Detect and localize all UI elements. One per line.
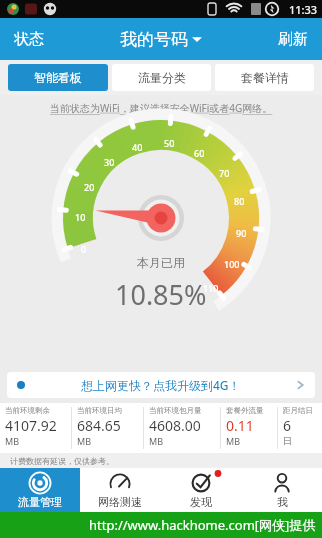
staticText: MB (77, 435, 92, 447)
staticText: 流量分类 (138, 70, 186, 85)
staticText: 684.65 (77, 416, 121, 435)
staticText: 10.85% (115, 276, 207, 313)
staticText: 距月结日 (283, 406, 313, 415)
staticText: 套餐外流量 (226, 406, 264, 415)
staticText: 110 (203, 282, 219, 294)
button[interactable]: 当前环境包月量 (144, 403, 220, 453)
staticText: MB (149, 435, 164, 447)
staticText: 当前环境包月量 (149, 406, 202, 415)
button[interactable]: 智能看板 (8, 64, 108, 91)
staticText: 80 (234, 195, 245, 207)
staticText: 我的号码 (120, 29, 188, 50)
staticText: 计费数据有延误，仅供参考。 (10, 456, 114, 466)
staticText: 状态 (14, 30, 44, 49)
staticText: 70 (219, 167, 230, 179)
staticText: 我 (277, 495, 288, 509)
staticText: 日 (283, 435, 292, 446)
staticText: 4107.92 (5, 416, 57, 435)
button[interactable]: 流量管理 (0, 468, 80, 512)
staticText: 30 (104, 156, 115, 168)
staticText: 0 (81, 243, 87, 255)
staticText: 流量管理 (18, 495, 62, 509)
staticText: 智能看板 (34, 70, 82, 85)
staticText: 当前状态为WiFi，建议选择安全WiFi或者4G网络。 (50, 101, 273, 115)
button[interactable]: 我的号码 (110, 18, 213, 60)
staticText: 11:33 (289, 2, 318, 17)
staticText: 当前环境剩余 (5, 406, 50, 415)
staticText: 20 (84, 181, 95, 193)
staticText: 100 (224, 258, 240, 270)
button[interactable]: 刷新 (264, 18, 322, 60)
staticText: 4608.00 (149, 416, 201, 435)
staticText: 本月已用 (137, 255, 185, 270)
staticText: 想上网更快？点我升级到4G！ (81, 377, 241, 393)
staticText: 刷新 (278, 30, 308, 49)
button[interactable]: 距月结日 (278, 403, 322, 453)
button[interactable]: 发现 (160, 468, 241, 512)
staticText: http://www.hackhome.com[网侠]提供 (89, 516, 316, 534)
staticText: 当前环境日均 (77, 406, 122, 415)
staticText: 网络测速 (98, 495, 142, 509)
staticText: 90 (236, 227, 247, 239)
staticText: 发现 (190, 495, 212, 509)
button[interactable]: 状态 (0, 18, 58, 60)
staticText: 40 (132, 141, 143, 153)
staticText: MB (226, 435, 241, 447)
staticText: 6 (283, 416, 292, 435)
button[interactable]: 套餐详情 (215, 64, 314, 91)
button[interactable]: 想上网更快？点我升级到4G！ (7, 372, 315, 398)
staticText: 套餐详情 (241, 70, 289, 85)
button[interactable]: 当前环境日均 (72, 403, 143, 453)
button[interactable]: 当前环境剩余 (0, 403, 71, 453)
staticText: 0.11 (226, 416, 254, 435)
button[interactable]: 流量分类 (112, 64, 211, 91)
staticText: 50 (164, 137, 175, 149)
button[interactable]: 我 (241, 468, 322, 512)
staticText: MB (5, 435, 20, 447)
button[interactable]: 网络测速 (80, 468, 160, 512)
staticText: 10 (75, 211, 86, 223)
staticText: 60 (194, 147, 205, 159)
button[interactable]: 套餐外流量 (221, 403, 277, 453)
